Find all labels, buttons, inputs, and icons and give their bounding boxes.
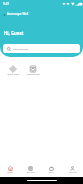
button[interactable]: Shop — [41, 164, 62, 175]
button[interactable]: Services — [20, 164, 41, 175]
staticText: Appointment — [26, 73, 40, 76]
button[interactable]: Account — [62, 164, 83, 175]
other: Logo — [3, 13, 6, 16]
button[interactable]: Home — [0, 164, 20, 175]
staticText: Search Services — [13, 48, 29, 51]
button[interactable]: Search Services — [3, 44, 80, 53]
staticText: Quick Wash — [7, 73, 20, 76]
staticText: Aeronaque Well — [7, 12, 29, 16]
staticText: Home — [7, 171, 13, 174]
button[interactable]: Quick Wash — [3, 65, 23, 76]
staticText: Services — [27, 171, 35, 174]
staticText: Hi, Guest — [4, 30, 24, 36]
button[interactable]: Appointment — [23, 65, 43, 76]
staticText: Account — [69, 171, 77, 174]
staticText: Shop — [49, 171, 54, 174]
staticText: 9:41 — [3, 2, 10, 6]
